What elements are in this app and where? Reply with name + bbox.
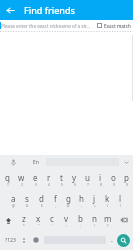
staticText: 0 xyxy=(126,183,128,187)
staticText: Find friends xyxy=(24,4,75,16)
staticText: ' xyxy=(52,224,53,228)
staticText: En xyxy=(33,159,39,166)
staticText: z xyxy=(22,213,26,224)
staticText: 2 xyxy=(21,183,23,187)
button[interactable]: Backspace xyxy=(115,210,133,230)
staticText: ? xyxy=(107,224,109,228)
staticText: Exact match xyxy=(104,23,131,29)
button[interactable]: d xyxy=(34,190,48,210)
staticText: c xyxy=(50,213,54,224)
button[interactable]: Shift xyxy=(0,210,17,230)
button[interactable]: y xyxy=(68,169,81,190)
staticText: q xyxy=(5,172,10,183)
staticText: ( xyxy=(107,204,108,208)
button[interactable]: i xyxy=(94,169,107,190)
staticText: i xyxy=(99,172,102,183)
staticText: ) xyxy=(120,204,121,208)
staticText: n xyxy=(92,213,97,224)
staticText: g xyxy=(66,193,71,204)
staticText: e xyxy=(33,172,38,183)
staticText: : xyxy=(66,224,67,228)
button[interactable]: e xyxy=(28,169,42,190)
staticText: 6 xyxy=(74,183,76,187)
button[interactable]: m xyxy=(101,210,115,230)
button[interactable]: Search xyxy=(117,234,130,247)
staticText: d xyxy=(39,193,44,204)
staticText: r xyxy=(47,172,51,183)
staticText: @ xyxy=(12,204,15,208)
staticText: ; xyxy=(80,224,81,228)
staticText: l xyxy=(119,193,122,204)
staticText: s xyxy=(25,193,29,204)
button[interactable]: w xyxy=(14,169,28,190)
button[interactable]: p xyxy=(120,169,133,190)
button[interactable]: a xyxy=(6,190,20,210)
button[interactable]: Emoji xyxy=(29,231,43,249)
button[interactable]: Voice input xyxy=(0,155,26,169)
staticText: v xyxy=(64,213,69,224)
staticText: " xyxy=(38,224,40,228)
staticText: 1 xyxy=(7,183,9,187)
button[interactable]: En xyxy=(26,155,46,169)
button[interactable]: l xyxy=(114,190,127,210)
button[interactable]: Please enter the exact nickname of a str… xyxy=(0,20,95,31)
staticText: ?123 xyxy=(5,237,16,244)
button[interactable]: r xyxy=(42,169,55,190)
staticText: ! xyxy=(94,224,95,228)
button[interactable]: v xyxy=(59,210,73,230)
staticText: 5 xyxy=(61,183,63,187)
staticText: x xyxy=(36,213,41,224)
button[interactable]: o xyxy=(107,169,120,190)
button[interactable]: Symbols xyxy=(19,231,29,249)
staticText: a xyxy=(11,193,16,204)
staticText: o xyxy=(111,172,116,183)
button[interactable]: Exact match xyxy=(97,20,131,31)
button[interactable]: g xyxy=(62,190,75,210)
staticText: t xyxy=(60,172,63,183)
button[interactable]: x xyxy=(31,210,45,230)
button[interactable]: ?123 xyxy=(1,231,19,249)
staticText: w xyxy=(18,172,25,183)
button[interactable]: f xyxy=(48,190,62,210)
staticText: 8 xyxy=(100,183,102,187)
staticText: & xyxy=(67,204,70,208)
staticText: 4 xyxy=(48,183,50,187)
staticText: u xyxy=(85,172,90,183)
button[interactable]: u xyxy=(81,169,94,190)
staticText: b xyxy=(78,213,83,224)
staticText: y xyxy=(72,172,77,183)
staticText: + xyxy=(94,204,96,208)
button[interactable]: q xyxy=(0,169,14,190)
staticText: 7 xyxy=(87,183,89,187)
staticText: $ xyxy=(41,204,43,208)
staticText: p xyxy=(124,172,129,183)
button[interactable]: j xyxy=(88,190,101,210)
button[interactable]: n xyxy=(87,210,101,230)
button[interactable]: c xyxy=(45,210,59,230)
button[interactable]: h xyxy=(75,190,88,210)
staticText: h xyxy=(79,193,84,204)
staticText: 3 xyxy=(35,183,37,187)
button[interactable]: b xyxy=(73,210,87,230)
button[interactable]: More options xyxy=(119,155,133,169)
staticText: # xyxy=(26,204,29,208)
staticText: * xyxy=(23,224,25,228)
staticText: - xyxy=(81,204,83,208)
staticText: f xyxy=(54,193,57,204)
staticText: m xyxy=(104,213,112,224)
staticText: _ xyxy=(55,204,57,208)
staticText: j xyxy=(93,193,96,204)
button[interactable]: t xyxy=(55,169,68,190)
staticText: 9 xyxy=(113,183,115,187)
button[interactable]: Back xyxy=(0,0,20,20)
button[interactable]: k xyxy=(101,190,114,210)
staticText: . xyxy=(111,235,113,245)
staticText: k xyxy=(105,193,110,204)
staticText: Please enter the exact nickname of a str… xyxy=(1,23,90,29)
button[interactable]: z xyxy=(17,210,31,230)
button[interactable]: . xyxy=(107,231,117,249)
button[interactable]: s xyxy=(20,190,34,210)
